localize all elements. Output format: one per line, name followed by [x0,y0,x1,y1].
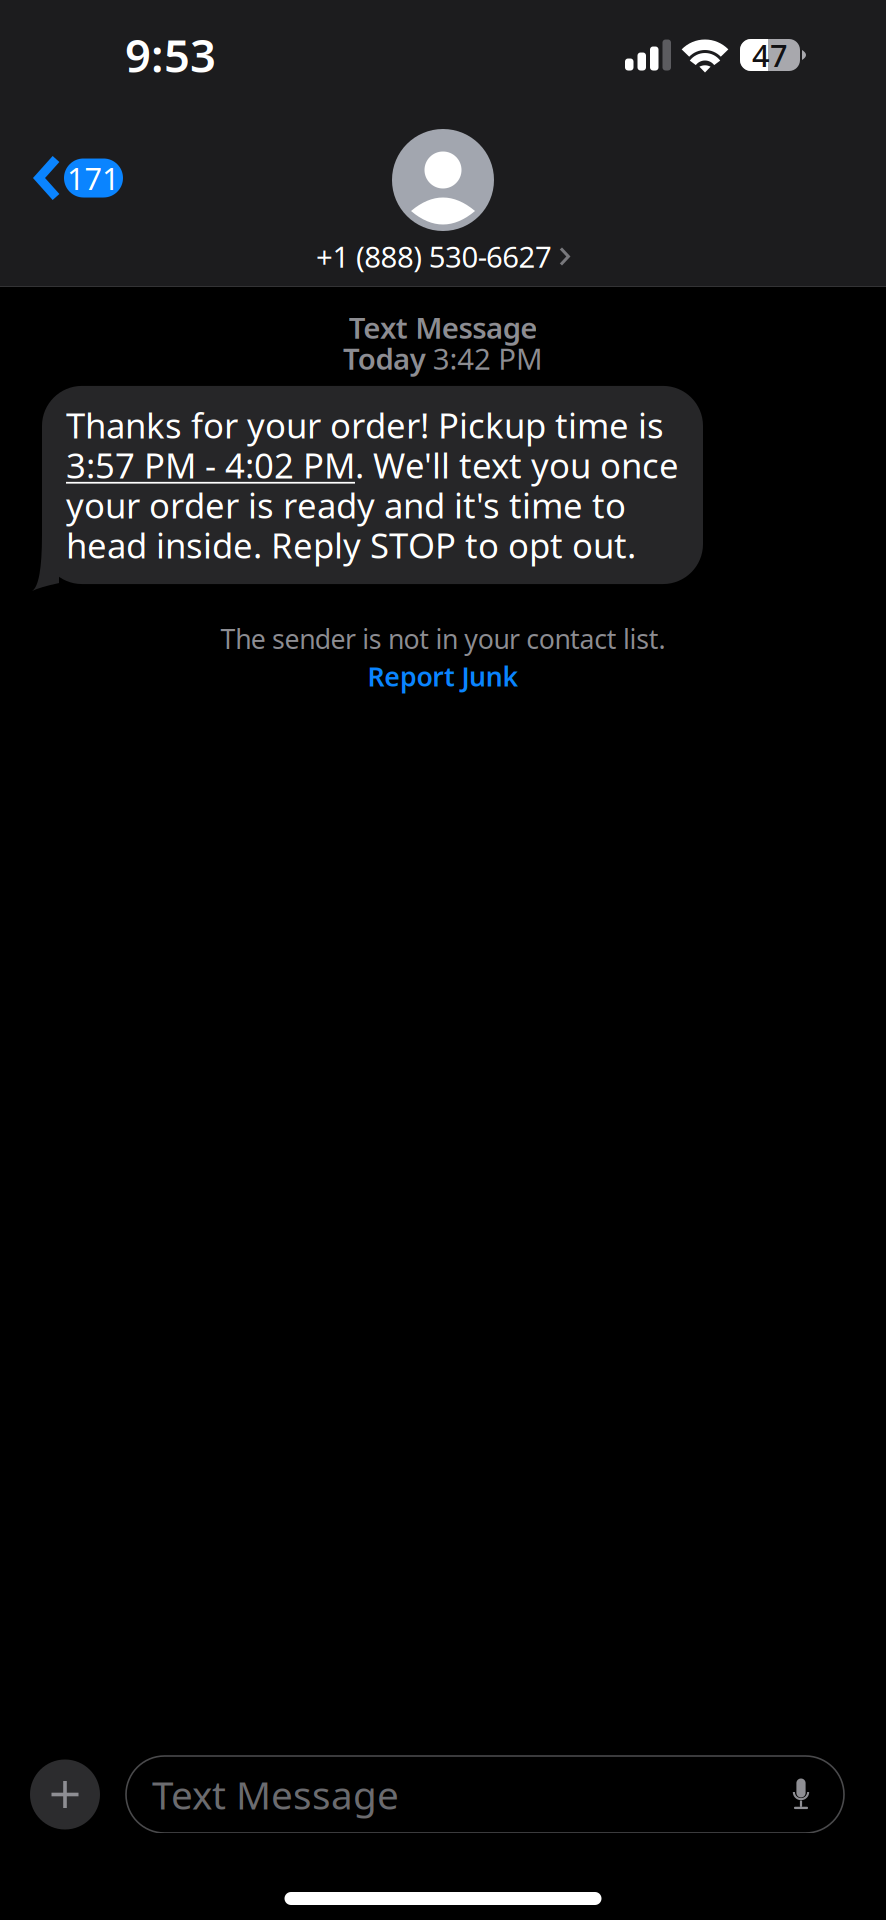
button[interactable]: Back to Messages, 171 unread [0,142,137,214]
button[interactable]: Add attachment [30,1759,100,1829]
staticText: Report Junk [367,658,518,694]
staticText: 171 [67,158,120,198]
staticText: your order is ready and it's time to [66,482,626,528]
button[interactable]: Report Junk [353,656,532,706]
staticText: The sender is not in your contact list. [221,621,665,656]
staticText: Thanks for your order! Pickup time is [66,402,664,448]
staticText: 3:57 PM - 4:02 PM. We'll text you once [66,442,679,488]
staticText: head inside. Reply STOP to opt out. [66,522,636,568]
staticText: Text Message [349,308,537,347]
staticText: +1 (888) 530-6627 [316,237,552,276]
staticText: 47 [752,35,788,75]
button[interactable]: Text Message input field [126,1756,844,1833]
button[interactable]: Contact details for +1 (888) 530-6627 [316,231,570,284]
staticText: Today [343,339,426,378]
staticText: Text Message [152,1769,399,1820]
staticText: 3:42 PM [433,339,543,378]
staticText: 9:53 [125,25,216,85]
